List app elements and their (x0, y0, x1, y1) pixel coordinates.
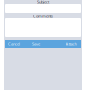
button[interactable]: Cancel (7, 40, 21, 48)
staticText: Save (32, 41, 40, 47)
button[interactable]: Attach (63, 40, 79, 48)
staticText: Attach (65, 41, 76, 47)
staticText: Comments (33, 13, 53, 19)
button[interactable]: Save (31, 40, 41, 48)
staticText: Cancel (8, 41, 20, 47)
staticText: Subject (37, 0, 49, 5)
